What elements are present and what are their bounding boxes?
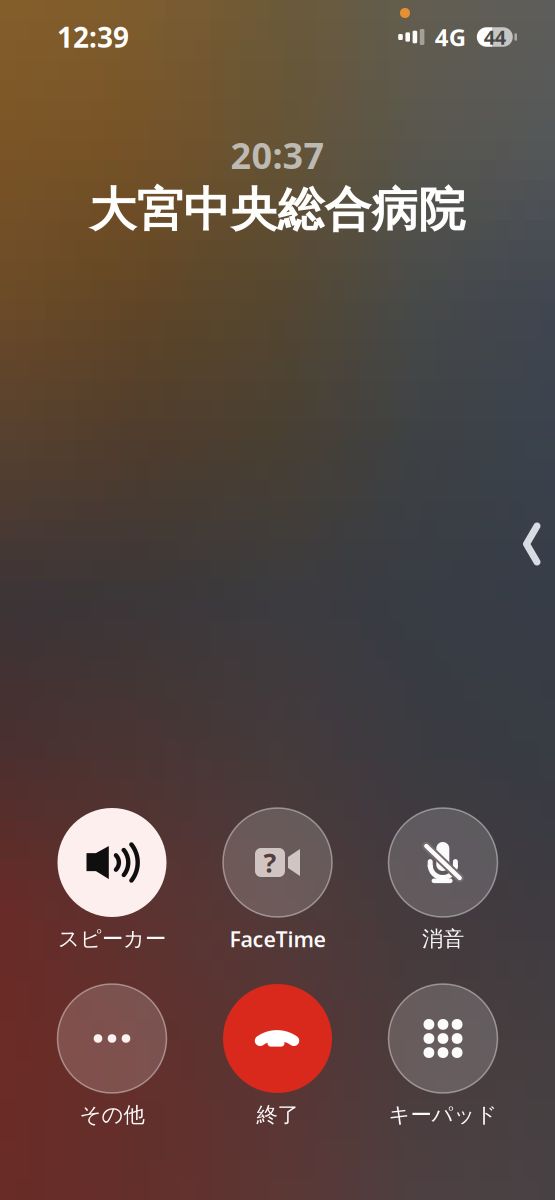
button[interactable]: キーパッド (360, 984, 526, 1128)
button[interactable]: 終了 (195, 984, 360, 1128)
staticText: 終了 (256, 1102, 298, 1128)
staticText: スピーカー (58, 926, 166, 952)
staticText: その他 (79, 1102, 144, 1128)
staticText: ? (263, 845, 276, 880)
staticText: 44 (484, 24, 506, 50)
staticText: 4G (435, 21, 466, 53)
staticText: 12:39 (57, 18, 129, 56)
staticText: 大宮中央総合病院 (89, 181, 465, 239)
staticText: 消音 (422, 926, 464, 952)
button[interactable]: ? (195, 808, 360, 952)
button[interactable]: Show more controls (523, 523, 555, 565)
staticText: キーパッド (388, 1102, 497, 1128)
button[interactable]: 消音 (360, 808, 526, 952)
button[interactable]: その他 (29, 984, 195, 1128)
button[interactable]: スピーカー (29, 808, 195, 952)
staticText: 20:37 (230, 131, 324, 179)
staticText: FaceTime (229, 925, 325, 953)
